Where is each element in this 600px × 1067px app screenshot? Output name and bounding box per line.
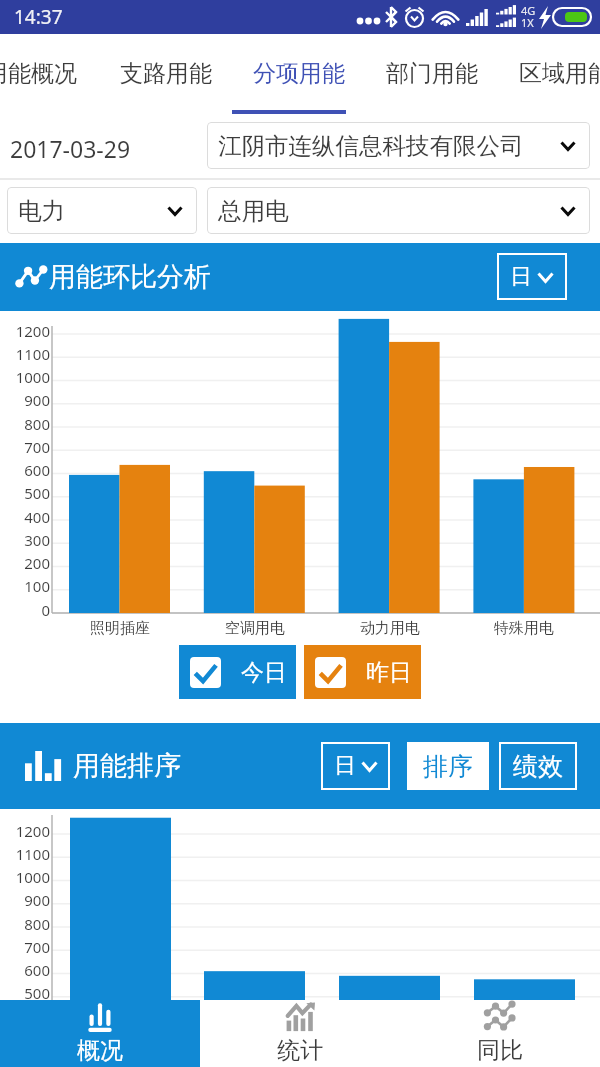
staticText: 绩效 bbox=[513, 751, 563, 782]
staticText: 区域用能 bbox=[519, 59, 600, 88]
button[interactable]: 电力 bbox=[7, 187, 197, 234]
staticText: 1100 bbox=[0, 844, 50, 864]
staticText: 日 bbox=[510, 263, 532, 291]
staticText: 昨日 bbox=[366, 658, 412, 687]
staticText: 用能排序 bbox=[73, 749, 181, 783]
staticText: 统计 bbox=[277, 1036, 323, 1065]
staticText: 4G bbox=[521, 3, 536, 18]
staticText: 同比 bbox=[477, 1036, 523, 1065]
staticText: 总用电 bbox=[218, 196, 289, 226]
staticText: 600 bbox=[0, 960, 50, 980]
staticText: 700 bbox=[0, 937, 50, 957]
button[interactable]: 日 选择周期 bbox=[321, 742, 390, 790]
staticText: 800 bbox=[0, 914, 50, 934]
button[interactable]: 用能概况 bbox=[0, 34, 99, 122]
staticText: 800 bbox=[0, 414, 50, 434]
staticText: 1200 bbox=[0, 821, 50, 841]
button[interactable]: 分项用能 bbox=[253, 34, 367, 122]
staticText: 300 bbox=[0, 530, 50, 550]
staticText: 1200 bbox=[0, 321, 50, 341]
staticText: 1100 bbox=[0, 344, 50, 364]
button[interactable]: 总用电 bbox=[207, 187, 590, 234]
button[interactable]: 江阴市连纵信息科技有限公司 bbox=[207, 122, 590, 169]
staticText: 900 bbox=[0, 390, 50, 410]
staticText: 1000 bbox=[0, 867, 50, 887]
staticText: 700 bbox=[0, 437, 50, 457]
staticText: 用能概况 bbox=[0, 59, 77, 88]
staticText: 400 bbox=[0, 507, 50, 527]
other: 统计 bbox=[285, 1002, 315, 1032]
staticText: 今日 bbox=[241, 658, 287, 687]
staticText: 600 bbox=[0, 460, 50, 480]
button[interactable]: 昨日 bbox=[304, 645, 421, 699]
staticText: 1000 bbox=[0, 367, 50, 387]
staticText: 14:37 bbox=[14, 4, 63, 30]
staticText: 用能环比分析 bbox=[49, 260, 211, 294]
staticText: 概况 bbox=[77, 1036, 123, 1065]
button[interactable]: 概况 bbox=[0, 1000, 200, 1067]
staticText: 照明插座 bbox=[90, 619, 150, 638]
button[interactable]: 排序 bbox=[407, 742, 489, 790]
staticText: 900 bbox=[0, 890, 50, 910]
button[interactable]: 统计 bbox=[200, 1000, 400, 1067]
staticText: 1X bbox=[521, 15, 534, 30]
button[interactable]: 区域用能 bbox=[519, 34, 600, 122]
button[interactable]: 绩效 bbox=[499, 742, 577, 790]
staticText: 500 bbox=[0, 983, 50, 1003]
staticText: 500 bbox=[0, 483, 50, 503]
staticText: 江阴市连纵信息科技有限公司 bbox=[218, 131, 524, 161]
staticText: 支路用能 bbox=[120, 59, 212, 88]
staticText: 部门用能 bbox=[386, 59, 478, 88]
staticText: 动力用电 bbox=[360, 619, 420, 638]
staticText: 日 bbox=[334, 752, 356, 780]
staticText: 100 bbox=[0, 576, 50, 596]
staticText: 0 bbox=[0, 600, 50, 620]
staticText: 电力 bbox=[18, 196, 65, 226]
button[interactable]: 支路用能 bbox=[120, 34, 234, 122]
staticText: 排序 bbox=[423, 751, 473, 782]
staticText: 特殊用电 bbox=[494, 619, 554, 638]
other: 概况 bbox=[85, 1002, 115, 1032]
other: 同比 bbox=[485, 1002, 515, 1032]
staticText: 分项用能 bbox=[253, 59, 345, 88]
staticText: 200 bbox=[0, 553, 50, 573]
button[interactable]: 同比 bbox=[400, 1000, 600, 1067]
button[interactable]: 日 选择周期 bbox=[497, 253, 567, 300]
staticText: 2017-03-29 bbox=[10, 133, 131, 164]
staticText: 空调用电 bbox=[225, 619, 285, 638]
button[interactable]: 今日 bbox=[179, 645, 296, 699]
button[interactable]: 部门用能 bbox=[386, 34, 500, 122]
